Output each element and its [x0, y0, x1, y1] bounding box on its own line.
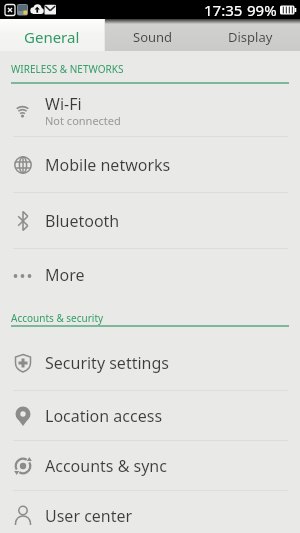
button[interactable]: More — [0, 249, 300, 300]
staticText: Mobile networks — [45, 154, 171, 176]
button[interactable]: Accounts & sync — [0, 441, 300, 490]
staticText: More — [45, 264, 85, 286]
staticText: 99% — [247, 0, 277, 19]
staticText: Sound — [133, 28, 173, 46]
staticText: Accounts & sync — [45, 455, 167, 477]
staticText: Bluetooth — [45, 210, 120, 232]
staticText: Wi-Fi — [45, 93, 82, 115]
staticText: User center — [45, 505, 133, 527]
staticText: Display — [228, 28, 273, 46]
button[interactable]: Location access — [0, 391, 300, 440]
button[interactable]: Display — [200, 19, 300, 51]
button[interactable]: Security settings — [0, 335, 300, 390]
button[interactable]: Wi-Fi — [0, 86, 300, 136]
button[interactable]: User center — [0, 499, 300, 533]
staticText: Security settings — [45, 352, 169, 374]
staticText: Location access — [45, 405, 163, 427]
button[interactable]: Bluetooth — [0, 193, 300, 248]
staticText: General — [24, 27, 80, 47]
staticText: WIRELESS & NETWORKS — [11, 62, 124, 76]
staticText: Not connected — [45, 113, 121, 128]
button[interactable]: Sound — [105, 19, 200, 51]
staticText: 17:35 — [204, 0, 243, 19]
button[interactable]: General — [0, 19, 104, 51]
button[interactable]: Mobile networks — [0, 137, 300, 192]
staticText: Accounts & security — [11, 311, 104, 325]
